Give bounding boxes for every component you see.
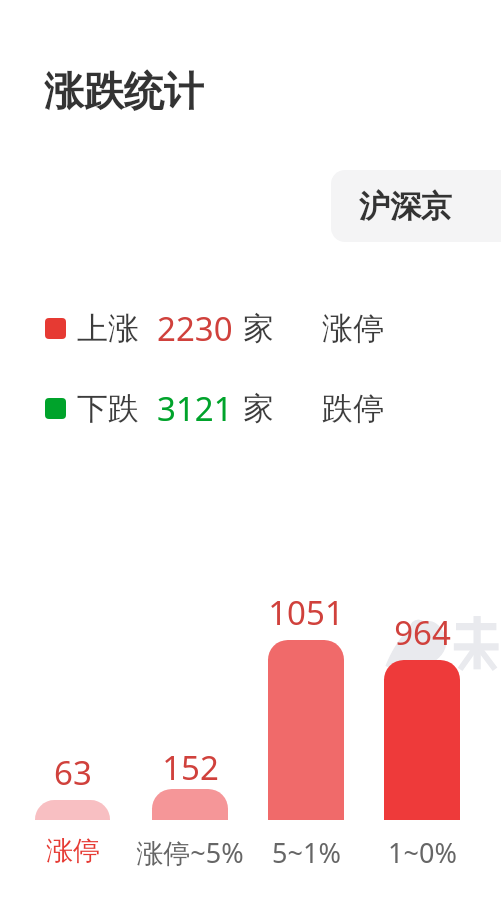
staticText: 1051 bbox=[268, 590, 344, 635]
staticText: 1~0% bbox=[388, 834, 457, 871]
staticText: 2230 bbox=[157, 306, 233, 351]
button[interactable]: 涨停~5% bbox=[152, 789, 228, 820]
staticText: 涨跌统计 bbox=[44, 66, 204, 116]
button[interactable]: 下跌 bbox=[0, 386, 501, 448]
staticText: 上涨 bbox=[77, 309, 139, 348]
staticText: 964 bbox=[394, 610, 451, 655]
staticText: 家 bbox=[243, 309, 274, 348]
button[interactable]: 5~1% bbox=[268, 640, 344, 820]
staticText: 5~1% bbox=[272, 834, 341, 871]
button[interactable]: 上涨 bbox=[0, 306, 501, 368]
staticText: 涨停 bbox=[46, 834, 100, 868]
button[interactable]: 1~0% bbox=[384, 660, 460, 820]
staticText: 沪深京 bbox=[359, 187, 452, 226]
staticText: 152 bbox=[162, 745, 219, 790]
staticText: 跌停 bbox=[322, 389, 384, 428]
staticText: 3121 bbox=[157, 386, 233, 431]
staticText: 涨停~5% bbox=[136, 834, 244, 871]
staticText: 家 bbox=[243, 389, 274, 428]
staticText: 涨停 bbox=[322, 309, 384, 348]
staticText: 63 bbox=[54, 750, 92, 795]
staticText: 下跌 bbox=[77, 389, 139, 428]
button[interactable]: 沪深京 bbox=[331, 170, 501, 242]
button[interactable]: 涨停 bbox=[35, 800, 110, 820]
